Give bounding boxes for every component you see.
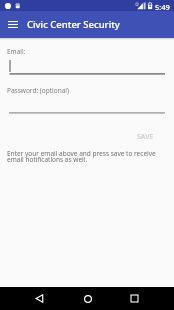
staticText: Email:: [7, 47, 26, 56]
button[interactable]: Password input field: [7, 98, 165, 115]
button[interactable]: Home: [73, 287, 102, 310]
staticText: Civic Center Security: [27, 18, 120, 31]
staticText: SAVE: [137, 132, 154, 142]
button[interactable]: Email input field: [7, 59, 165, 76]
staticText: 5:49: [155, 2, 170, 12]
button[interactable]: Recent apps: [120, 287, 149, 310]
button[interactable]: Open navigation menu: [0, 11, 26, 38]
button[interactable]: Back: [25, 287, 54, 310]
button[interactable]: SAVE: [132, 128, 159, 146]
staticText: Enter your email above and press save to…: [7, 149, 159, 164]
staticText: Password: (optional): [7, 86, 69, 95]
